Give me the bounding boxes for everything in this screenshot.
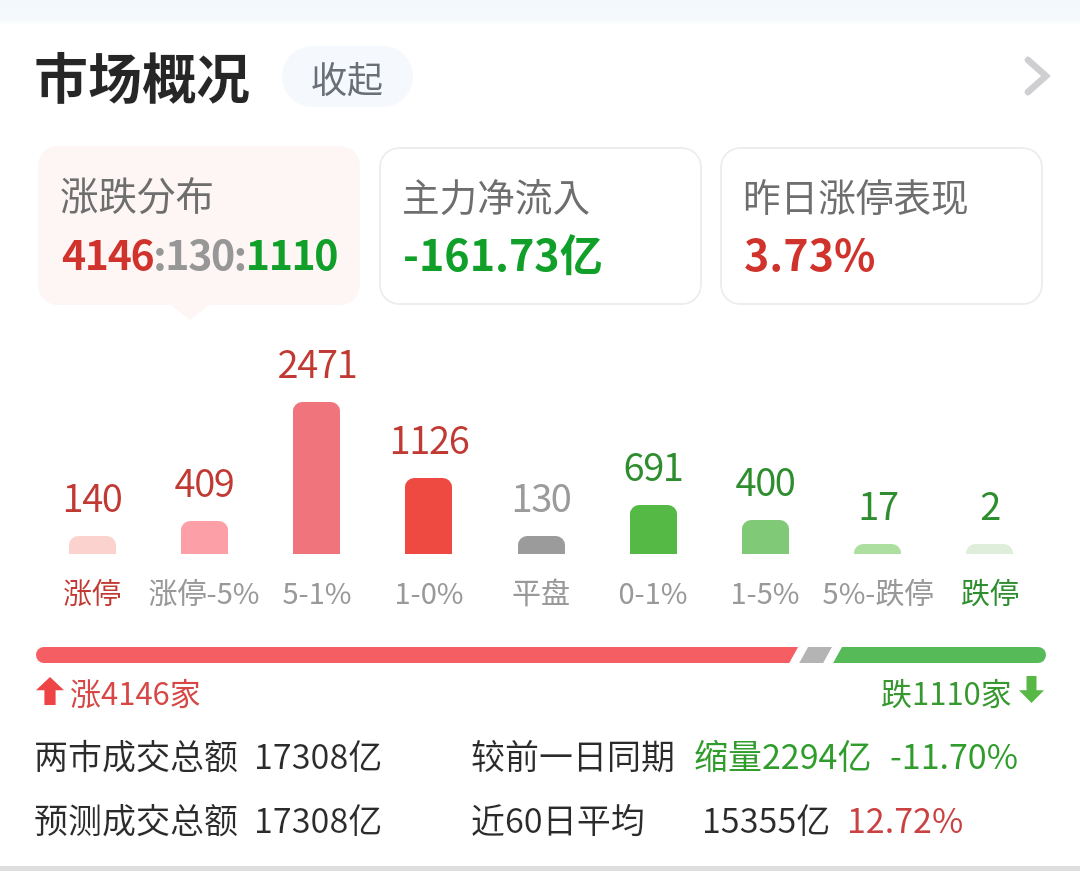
- staticText: 跌1110家: [881, 669, 1012, 714]
- staticText: 409: [104, 453, 304, 508]
- staticText: 两市成交总额: [34, 730, 238, 779]
- staticText: 0-1%: [553, 570, 753, 612]
- staticText: -161.73亿: [403, 221, 603, 283]
- staticText: 跌停: [890, 570, 1080, 612]
- staticText: 主力净流入: [402, 167, 590, 221]
- staticText: 1126: [329, 410, 529, 465]
- staticText: 17308亿: [254, 794, 383, 843]
- staticText: -11.70%: [890, 730, 1019, 779]
- staticText: 昨日涨停表现: [743, 167, 969, 221]
- staticText: 691: [553, 437, 753, 492]
- staticText: 较前一日同期: [471, 730, 675, 779]
- staticText: 缩量2294亿: [694, 730, 872, 779]
- staticText: 400: [665, 452, 865, 507]
- button[interactable]: 查看详情: [1006, 46, 1068, 106]
- staticText: 4146:130:1110: [62, 222, 338, 281]
- staticText: 涨跌分布: [60, 165, 215, 221]
- staticText: 2471: [217, 334, 417, 389]
- button[interactable]: 昨日涨停表现: [720, 147, 1043, 305]
- staticText: 1-0%: [329, 570, 529, 612]
- staticText: 130: [441, 468, 641, 523]
- staticText: 近60日平均: [471, 794, 645, 843]
- staticText: 涨4146家: [70, 669, 201, 714]
- staticText: 2: [890, 476, 1080, 531]
- button[interactable]: 主力净流入: [379, 147, 702, 305]
- button[interactable]: 涨跌分布: [38, 146, 360, 305]
- staticText: 预测成交总额: [34, 794, 238, 843]
- staticText: 17: [778, 476, 978, 531]
- staticText: 5%-跌停: [778, 570, 978, 612]
- staticText: 15355亿: [702, 794, 831, 843]
- staticText: 1-5%: [665, 570, 865, 612]
- staticText: 涨停-5%: [104, 570, 304, 612]
- staticText: 5-1%: [217, 570, 417, 612]
- button[interactable]: 收起: [282, 46, 413, 107]
- staticText: 140: [0, 468, 192, 523]
- staticText: 17308亿: [254, 730, 383, 779]
- staticText: 平盘: [441, 570, 641, 612]
- staticText: 12.72%: [847, 794, 964, 843]
- staticText: 3.73%: [744, 221, 876, 283]
- staticText: 收起: [311, 51, 384, 103]
- staticText: 市场概况: [34, 36, 250, 114]
- staticText: 涨停: [0, 570, 192, 612]
